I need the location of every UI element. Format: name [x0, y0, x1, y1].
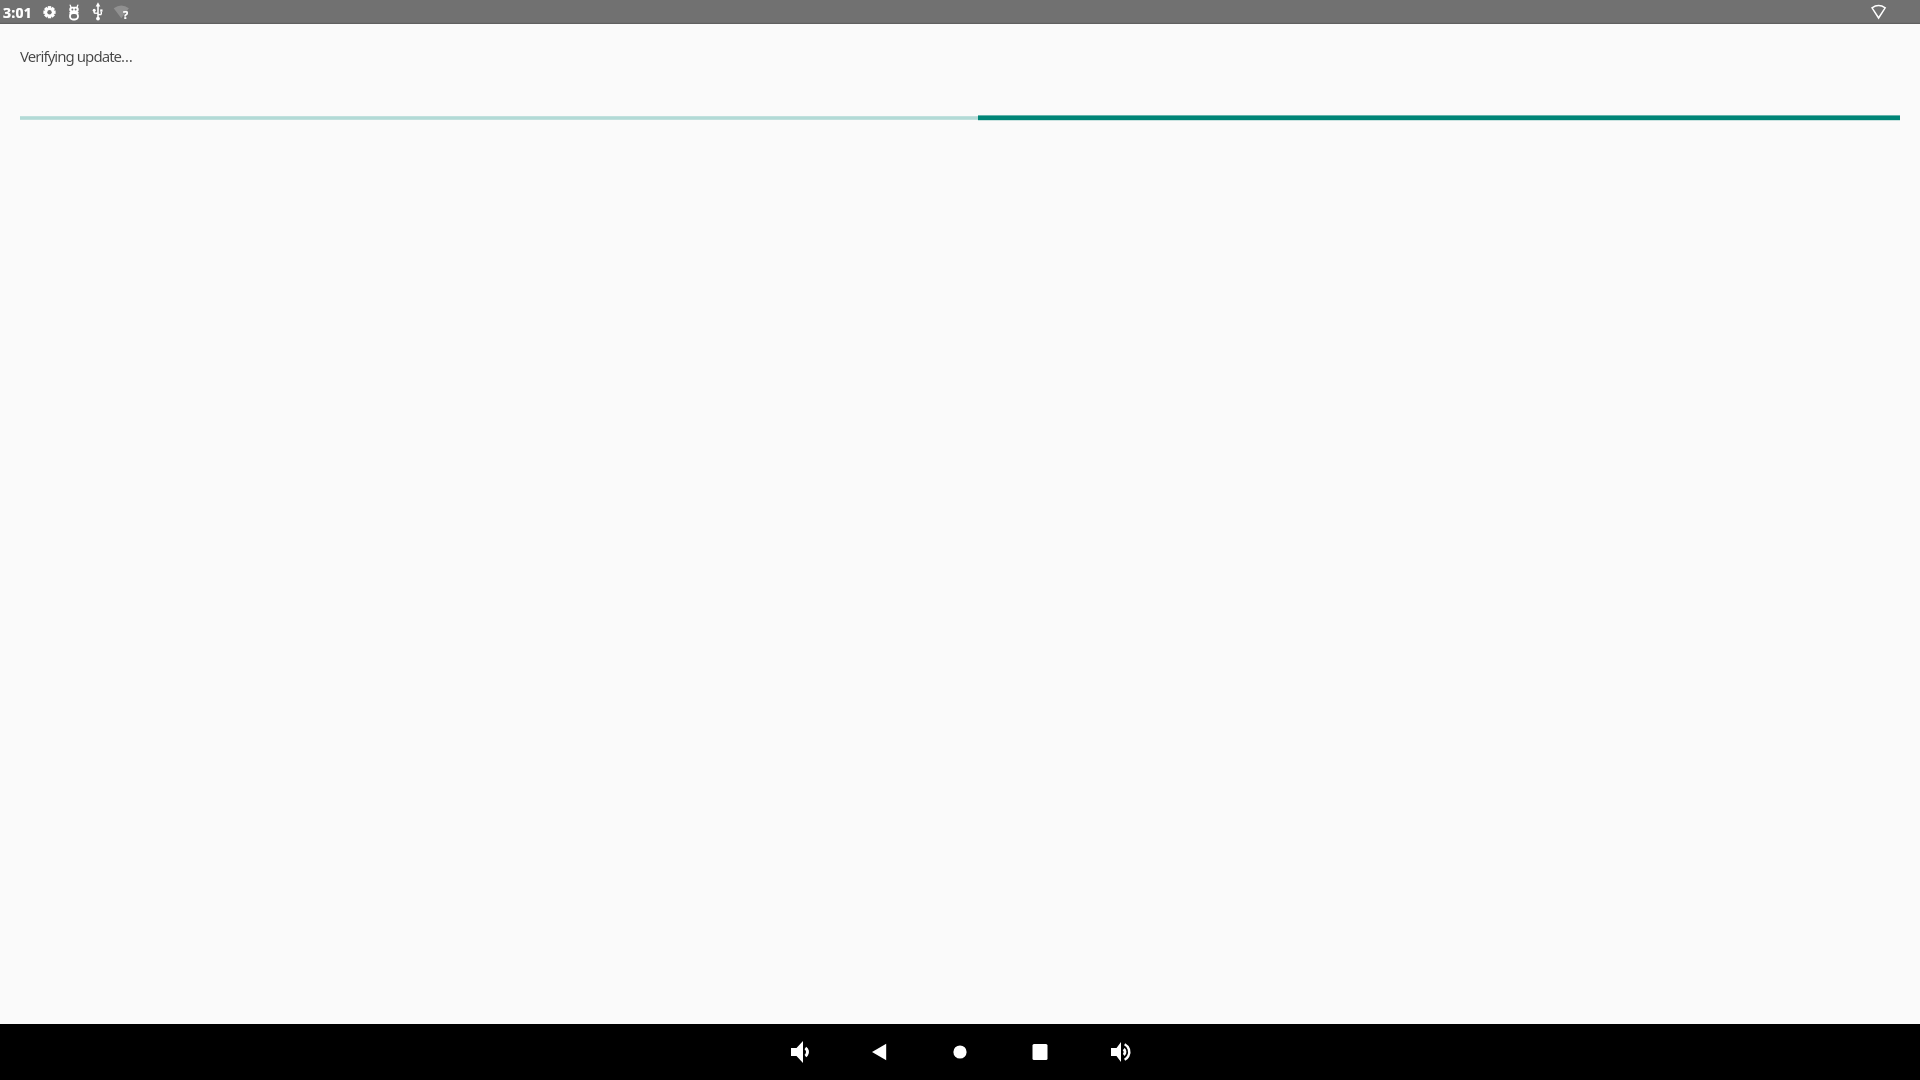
button[interactable]	[1080, 1024, 1160, 1080]
staticText: Verifying update…	[20, 46, 133, 66]
button[interactable]	[920, 1024, 1000, 1080]
staticText: ?	[123, 7, 129, 22]
button[interactable]	[1000, 1024, 1080, 1080]
button[interactable]	[840, 1024, 920, 1080]
staticText: 3:01	[3, 3, 33, 22]
button[interactable]	[760, 1024, 840, 1080]
